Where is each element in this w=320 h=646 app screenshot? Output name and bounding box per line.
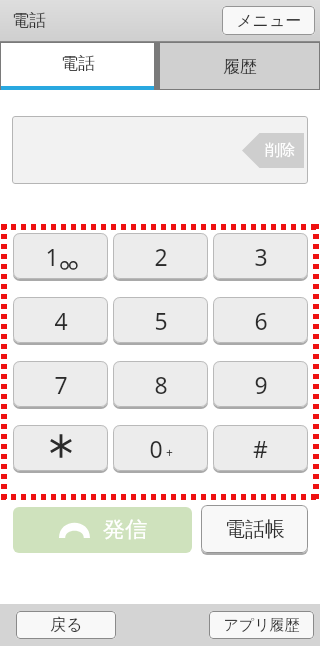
staticText: メニュー <box>236 11 302 31</box>
staticText: 1 <box>45 241 59 272</box>
button[interactable]: 9 <box>213 361 308 407</box>
button[interactable]: 0 <box>113 425 208 471</box>
button[interactable]: 2 <box>113 233 208 279</box>
staticText: 4 <box>54 305 68 336</box>
button[interactable]: 電話 <box>1 43 154 90</box>
button[interactable]: 削除 <box>242 133 304 168</box>
button[interactable]: # <box>213 425 308 471</box>
staticText: # <box>253 433 268 464</box>
staticText: 電話帳 <box>225 517 285 542</box>
button[interactable]: 1 <box>13 233 108 279</box>
button[interactable]: 8 <box>113 361 208 407</box>
staticText: 履歴 <box>223 56 257 77</box>
button[interactable]: 5 <box>113 297 208 343</box>
staticText: 2 <box>154 241 168 272</box>
staticText: 9 <box>254 369 268 400</box>
staticText: 削除 <box>265 141 295 160</box>
staticText: 3 <box>254 241 268 272</box>
staticText: 0 <box>149 433 163 464</box>
button[interactable]: 履歴 <box>160 43 319 89</box>
staticText: 発信 <box>103 516 147 544</box>
button[interactable]: メニュー <box>222 6 315 35</box>
button[interactable]: 発信 <box>13 507 192 553</box>
button[interactable]: 3 <box>213 233 308 279</box>
staticText: 戻る <box>50 615 83 635</box>
staticText: 7 <box>54 369 68 400</box>
button[interactable]: アプリ履歴 <box>209 611 314 639</box>
button[interactable]: 戻る <box>16 611 116 639</box>
staticText: 5 <box>154 305 168 336</box>
button[interactable]: 6 <box>213 297 308 343</box>
button[interactable]: 7 <box>13 361 108 407</box>
button[interactable]: 電話帳 <box>201 505 308 553</box>
staticText: アプリ履歴 <box>223 616 300 635</box>
staticText: + <box>166 444 173 460</box>
staticText: 8 <box>154 369 168 400</box>
button[interactable] <box>13 425 108 471</box>
staticText: 電話 <box>61 53 95 74</box>
button[interactable]: 4 <box>13 297 108 343</box>
staticText: 6 <box>254 305 268 336</box>
staticText: 電話 <box>12 10 46 31</box>
